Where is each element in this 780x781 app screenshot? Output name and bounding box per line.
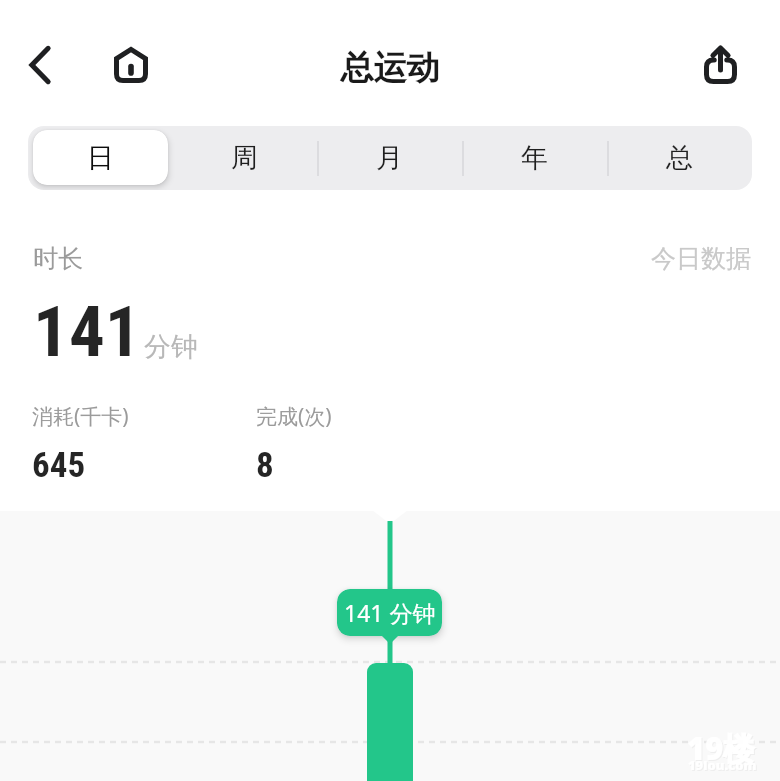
staticText: 总 <box>666 141 693 175</box>
staticText: 19lou.com <box>689 757 758 775</box>
button[interactable]: 年 <box>462 126 607 190</box>
staticText: 19lou.com <box>688 756 757 774</box>
staticText: 月 <box>376 141 403 175</box>
staticText: 完成(次) <box>256 402 332 431</box>
button[interactable]: 总 <box>607 126 752 190</box>
staticText: 总运动 <box>0 47 780 89</box>
button[interactable]: Back <box>10 35 70 95</box>
staticText: 645 <box>32 445 86 486</box>
button[interactable]: Home <box>100 35 161 95</box>
staticText: 分钟 <box>144 330 198 364</box>
button[interactable]: Share <box>690 35 750 95</box>
button[interactable] <box>28 126 172 190</box>
staticText: 19楼 <box>687 727 755 769</box>
button[interactable]: 日 <box>33 130 168 185</box>
staticText: 日 <box>87 141 114 175</box>
staticText: 消耗(千卡) <box>32 402 129 431</box>
staticText: 今日数据 <box>651 243 751 274</box>
staticText: 年 <box>521 141 548 175</box>
button[interactable]: 141 分钟 <box>337 589 442 636</box>
button[interactable]: 周 <box>172 126 317 190</box>
staticText: 8 <box>256 445 274 486</box>
staticText: 141 <box>33 290 141 373</box>
button[interactable]: 月 <box>317 126 462 190</box>
staticText: 141 分钟 <box>344 597 436 628</box>
staticText: 周 <box>231 141 258 175</box>
staticText: 19楼 <box>688 728 756 770</box>
staticText: 时长 <box>33 243 83 274</box>
